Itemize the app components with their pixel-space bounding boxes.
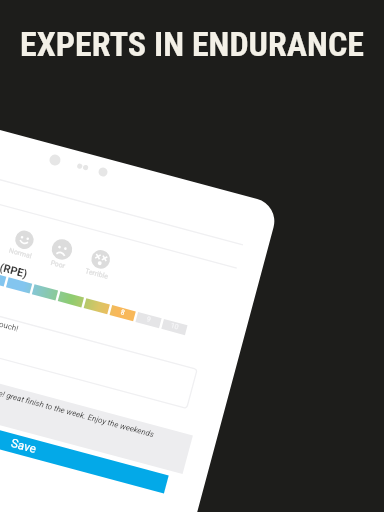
button[interactable]: Experts in endurance promotional screen <box>0 0 384 512</box>
